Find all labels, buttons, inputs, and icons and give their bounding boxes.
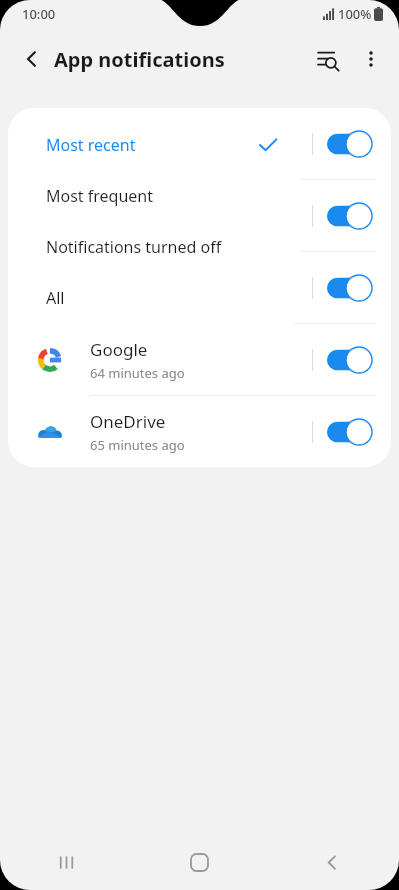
staticText: App notifications (54, 46, 225, 73)
button[interactable]: Toggle notifications (327, 346, 373, 374)
button[interactable]: OneDrive (8, 396, 391, 467)
button[interactable]: Toggle notifications (8, 180, 391, 251)
button[interactable]: Notifications turned off (22, 221, 300, 272)
staticText: 65 minutes ago (90, 436, 185, 454)
button[interactable]: Back (266, 834, 399, 890)
staticText: Most recent (46, 134, 258, 156)
staticText: Google (90, 338, 148, 361)
button[interactable]: Google (8, 324, 391, 395)
staticText: 10:00 (22, 5, 56, 23)
staticText: Notifications turned off (46, 236, 300, 258)
staticText: 100% (338, 5, 372, 23)
button[interactable]: Toggle notifications (327, 418, 373, 446)
staticText: All (46, 287, 300, 309)
button[interactable]: Recents (0, 834, 133, 890)
button[interactable]: Toggle notifications (8, 108, 391, 179)
button[interactable]: Most recent (22, 119, 300, 170)
staticText: 64 minutes ago (90, 364, 185, 382)
button[interactable]: Back (12, 39, 52, 79)
button[interactable]: AppCloud (8, 252, 391, 323)
button[interactable]: Home (133, 834, 266, 890)
staticText: OneDrive (90, 410, 166, 433)
button[interactable]: More options (349, 37, 393, 81)
staticText: Most frequent (46, 185, 300, 207)
button[interactable]: Toggle notifications (327, 274, 373, 302)
button[interactable]: Toggle notifications (327, 202, 373, 230)
button[interactable]: Most frequent (22, 170, 300, 221)
button[interactable]: Toggle notifications (327, 130, 373, 158)
button[interactable]: All (22, 272, 300, 323)
button[interactable]: Search (305, 37, 349, 81)
